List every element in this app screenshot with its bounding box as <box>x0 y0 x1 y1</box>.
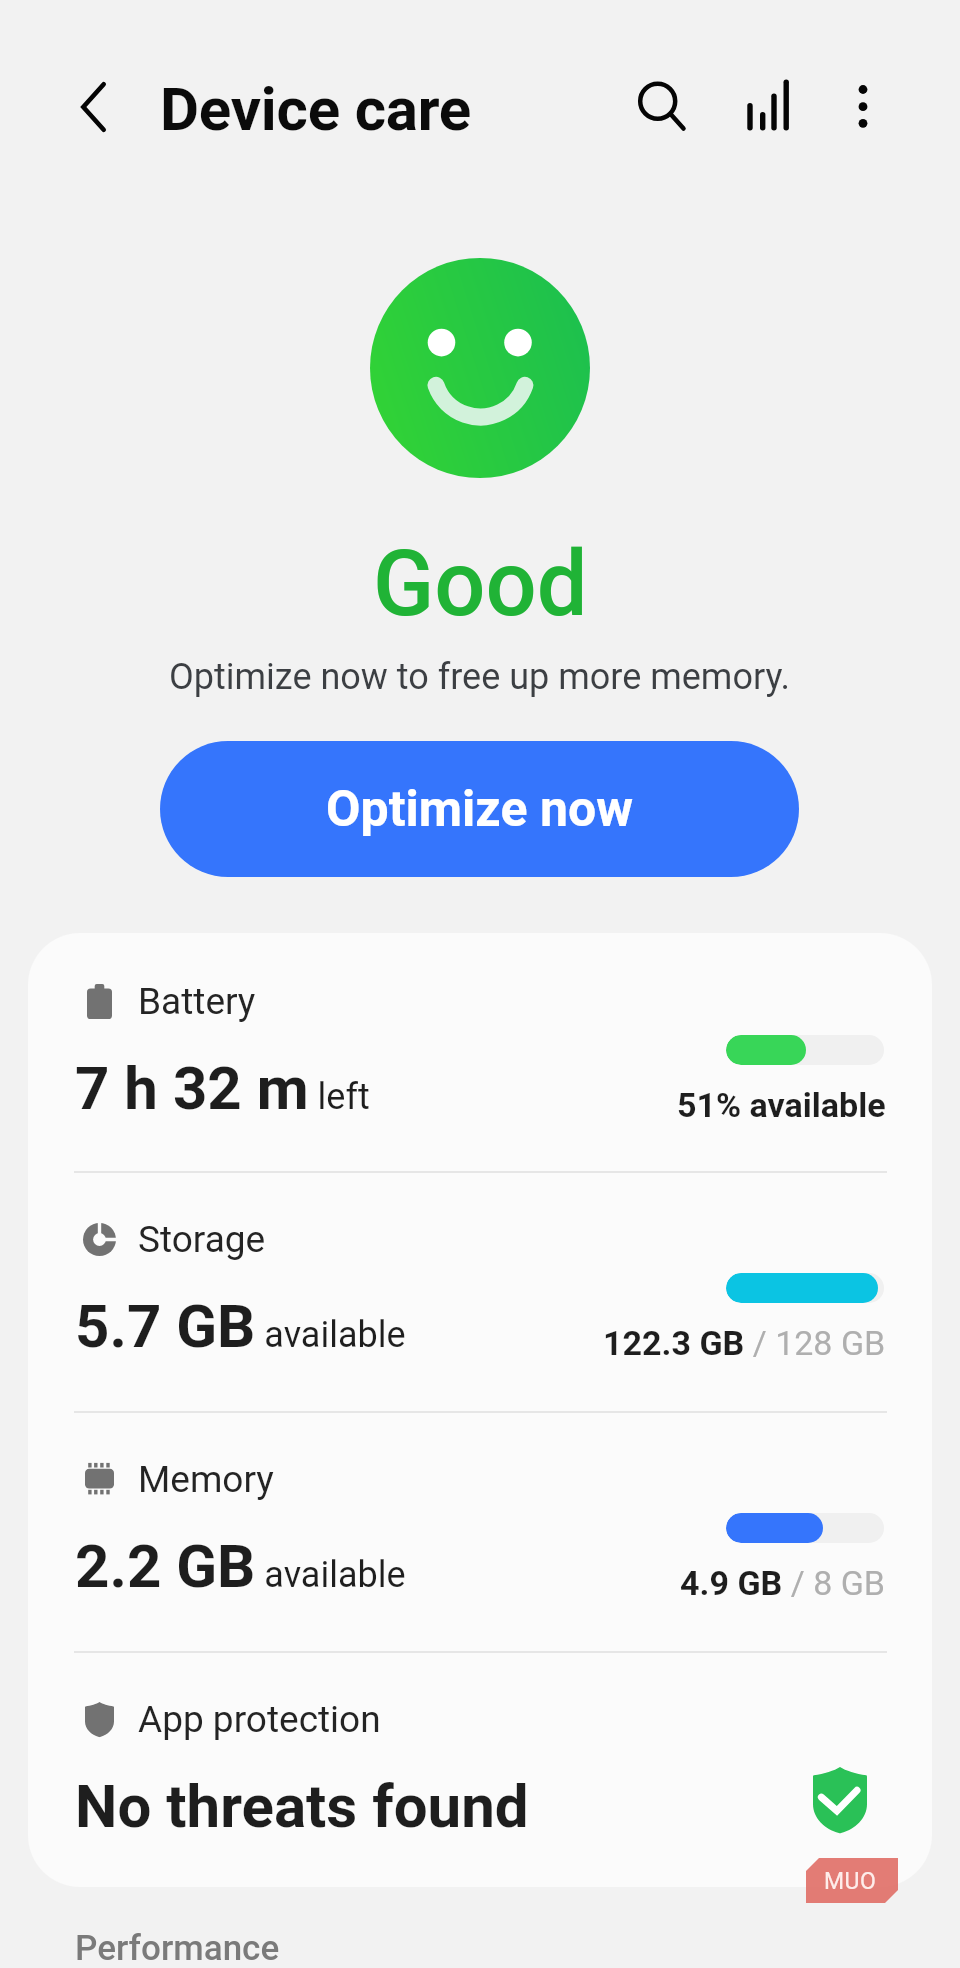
button[interactable]: Optimize now <box>160 741 799 877</box>
staticText: 5.7 GB available <box>75 1291 406 1361</box>
staticText: Storage <box>138 1218 266 1261</box>
button[interactable]: Storage <box>28 1171 932 1411</box>
staticText: Optimize now <box>326 780 633 839</box>
staticText: Performance <box>75 1928 280 1968</box>
staticText: Good <box>373 532 588 637</box>
button[interactable]: More options <box>831 70 895 134</box>
button[interactable]: Memory <box>28 1411 932 1651</box>
staticText: Device care <box>160 74 472 144</box>
staticText: Optimize now to free up more memory. <box>169 656 791 698</box>
staticText: App protection <box>138 1698 381 1741</box>
button[interactable]: Usage statistics <box>732 70 804 142</box>
staticText: 7 h 32 m left <box>75 1053 370 1123</box>
button[interactable]: Battery <box>28 933 932 1173</box>
staticText: 51% available <box>677 1085 886 1125</box>
staticText: MUO <box>824 1868 877 1895</box>
button[interactable]: Search <box>624 70 696 142</box>
staticText: 4.9 GB / 8 GB <box>680 1563 886 1603</box>
staticText: Memory <box>138 1458 274 1501</box>
button[interactable]: Back <box>60 74 126 140</box>
button[interactable]: App protection <box>28 1651 932 1887</box>
staticText: 2.2 GB available <box>75 1531 406 1601</box>
staticText: Battery <box>138 980 256 1023</box>
staticText: No threats found <box>75 1771 529 1841</box>
staticText: 122.3 GB / 128 GB <box>603 1323 886 1363</box>
